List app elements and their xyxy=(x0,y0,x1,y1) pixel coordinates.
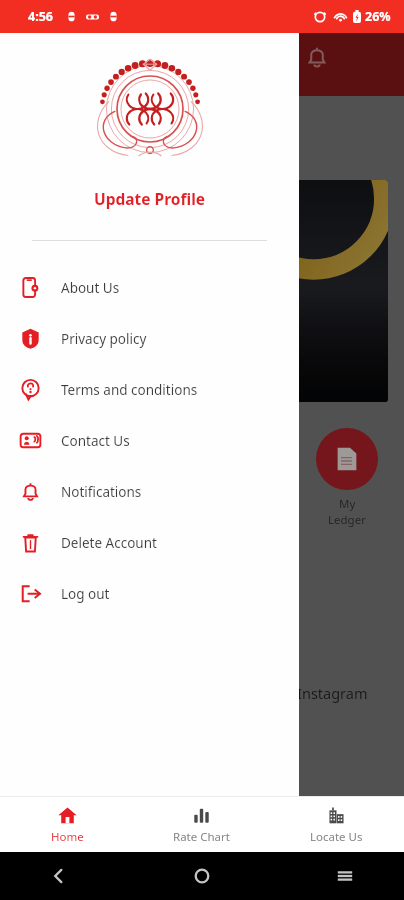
button[interactable]: About Us xyxy=(0,262,299,313)
button[interactable]: Notifications xyxy=(305,45,329,69)
staticText: Contact Us xyxy=(61,432,130,450)
button[interactable]: Rate Chart xyxy=(134,797,269,852)
staticText: 26% xyxy=(365,8,391,25)
staticText: Log out xyxy=(61,585,110,603)
staticText: Privacy policy xyxy=(61,330,147,348)
other: Back xyxy=(50,867,68,885)
staticText: Delete Account xyxy=(61,534,157,552)
staticText: Notifications xyxy=(61,483,142,501)
staticText: Terms and conditions xyxy=(61,381,198,399)
button[interactable]: Locate Us xyxy=(269,797,404,852)
staticText: 22 KT Gold / 10 gm Silver xyxy=(16,150,157,166)
button[interactable]: Update Profile xyxy=(0,185,299,212)
other: Recents xyxy=(336,867,354,885)
button[interactable]: Privacy policy xyxy=(0,313,299,364)
staticText: Rate Chart xyxy=(173,829,230,845)
staticText: Ledger xyxy=(328,512,366,528)
staticText: 4:56 xyxy=(28,8,53,25)
button[interactable]: Terms and conditions xyxy=(0,364,299,415)
staticText: About Us xyxy=(61,279,120,297)
button[interactable]: Home xyxy=(0,797,134,852)
other: Home xyxy=(193,867,211,885)
staticText: Instagram xyxy=(297,683,368,703)
button[interactable]: Notifications xyxy=(0,466,299,517)
button[interactable]: Delete Account xyxy=(0,517,299,568)
button[interactable]: My Ledger xyxy=(316,428,378,490)
staticText: My xyxy=(339,496,356,512)
staticText: Update Profile xyxy=(94,188,206,209)
button[interactable]: Contact Us xyxy=(0,415,299,466)
staticText: Home xyxy=(51,829,84,845)
staticText: Locate Us xyxy=(310,829,363,845)
button[interactable]: Log out xyxy=(0,568,299,619)
